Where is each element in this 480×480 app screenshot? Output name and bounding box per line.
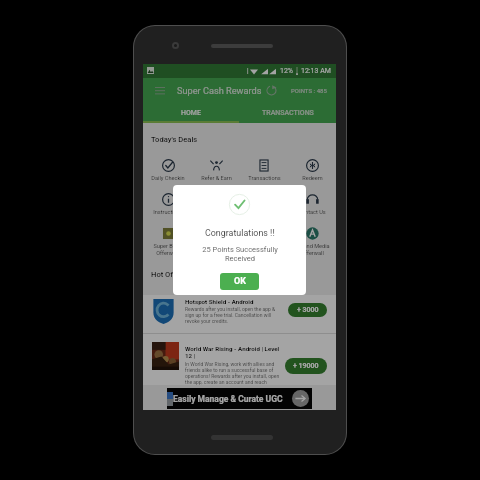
button[interactable]: POINTS : 485: [291, 78, 327, 103]
staticText: Survey Wall: [250, 243, 279, 250]
staticText: Today's Deals: [151, 135, 198, 144]
staticText: Instructions: [153, 209, 183, 216]
staticText: Daily Checkin: [151, 175, 185, 182]
staticText: Super Bowl Offerwall: [153, 243, 182, 257]
staticText: Refer & Earn: [201, 175, 232, 182]
button[interactable]: FAQ: [240, 192, 288, 223]
staticText: + 19000: [293, 362, 319, 370]
button[interactable]: + 3000: [288, 303, 327, 317]
button[interactable]: Leaderboard: [192, 192, 240, 223]
button[interactable]: + 19000: [285, 358, 327, 374]
button[interactable]: Survey Wall: [240, 226, 288, 257]
button[interactable]: Ad and Media Offerwall: [288, 226, 336, 257]
staticText: Rewards after you install, open the app …: [185, 306, 281, 324]
button[interactable]: Contact Us: [288, 192, 336, 223]
staticText: 12:13 AM: [301, 67, 331, 75]
staticText: Super Cash Rewards: [177, 85, 262, 96]
button[interactable]: HOME: [143, 103, 239, 123]
staticText: Congratulations !!: [205, 228, 275, 238]
staticText: POINTS : 485: [291, 87, 327, 94]
button[interactable]: Super Bowl Offerwall: [143, 226, 192, 257]
staticText: Hotspot Shield - Android: [185, 298, 254, 305]
staticText: Offerwall: [205, 243, 228, 250]
staticText: Easily Manage & Curate UGC: [173, 394, 283, 404]
button[interactable]: TRANSACTIONS: [239, 103, 336, 123]
button[interactable]: Instructions: [143, 192, 192, 223]
button[interactable]: Open ad: [292, 390, 309, 407]
staticText: Transactions: [248, 175, 281, 182]
staticText: OK: [234, 276, 246, 287]
button[interactable]: World War Rising - Android | Level 12 |: [143, 334, 336, 385]
staticText: 25 Points Successfully Received: [202, 245, 278, 263]
button[interactable]: Refresh: [261, 78, 281, 103]
staticText: HOME: [181, 109, 201, 117]
staticText: In World War Rising, work with allies an…: [185, 361, 281, 385]
button[interactable]: Refer & Earn: [192, 158, 240, 189]
staticText: TRANSACTIONS: [262, 109, 314, 117]
staticText: Contact Us: [298, 209, 326, 216]
button[interactable]: Open navigation menu: [149, 78, 171, 103]
button[interactable]: Offerwall: [192, 226, 240, 257]
button[interactable]: OK: [220, 273, 259, 290]
staticText: 12%: [280, 67, 293, 75]
staticText: World War Rising - Android | Level 12 |: [185, 345, 281, 360]
button[interactable]: Hotspot Shield - Android: [143, 295, 336, 333]
staticText: Ad and Media Offerwall: [295, 243, 330, 257]
button[interactable]: Easily Manage & Curate UGC: [167, 388, 312, 409]
staticText: + 3000: [297, 306, 319, 314]
button[interactable]: Daily Checkin: [143, 158, 192, 189]
staticText: Hot Offers: [151, 270, 187, 279]
staticText: Redeem: [302, 175, 323, 182]
button[interactable]: Redeem: [288, 158, 336, 189]
button[interactable]: Transactions: [240, 158, 288, 189]
